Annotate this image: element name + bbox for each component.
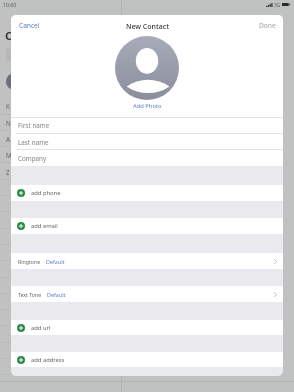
- button[interactable]: add address: [11, 352, 283, 367]
- staticText: Last name: [18, 138, 49, 147]
- button[interactable]: Company: [11, 150, 283, 166]
- staticText: A: [6, 135, 10, 143]
- button[interactable]: Done: [255, 17, 280, 34]
- staticText: Default: [47, 291, 66, 298]
- staticText: Company: [18, 154, 47, 163]
- button[interactable]: Add Photo: [115, 36, 179, 100]
- staticText: Done: [259, 21, 276, 30]
- staticText: Text Tone: [18, 291, 42, 298]
- staticText: Default: [46, 258, 65, 265]
- staticText: First name: [18, 121, 50, 130]
- staticText: Co: [5, 28, 19, 43]
- staticText: K: [6, 102, 10, 110]
- staticText: Ringtone: [18, 258, 41, 265]
- button[interactable]: Text Tone: [11, 286, 283, 302]
- button[interactable]: Add Photo: [128, 101, 166, 111]
- staticText: add email: [31, 222, 58, 230]
- staticText: N: [6, 119, 11, 127]
- button[interactable]: Cancel: [15, 17, 44, 34]
- staticText: add phone: [31, 189, 61, 197]
- button[interactable]: First name: [11, 117, 283, 133]
- staticText: 3G: [274, 2, 281, 9]
- staticText: add url: [31, 324, 51, 332]
- staticText: Add Photo: [133, 102, 162, 110]
- staticText: New Contact: [126, 22, 169, 31]
- button[interactable]: Last name: [11, 134, 283, 150]
- staticText: Z: [6, 168, 10, 176]
- button[interactable]: Ringtone: [11, 253, 283, 269]
- button[interactable]: add phone: [11, 185, 283, 201]
- staticText: Cancel: [19, 21, 40, 30]
- button[interactable]: add email: [11, 218, 283, 234]
- staticText: add address: [31, 356, 65, 364]
- staticText: M: [6, 151, 12, 159]
- staticText: 10:00: [3, 1, 17, 8]
- button[interactable]: add url: [11, 320, 283, 335]
